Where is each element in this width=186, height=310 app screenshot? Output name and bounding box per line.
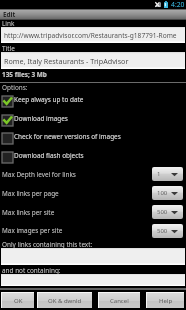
staticText: Title [2,44,15,53]
staticText: Max links per site [2,208,55,217]
staticText: Max Depth level for links [2,170,76,179]
staticText: Max links per page [2,189,59,198]
button[interactable]: Check for newer versions of images [1,132,181,145]
staticText: Download flash objects [14,151,84,160]
staticText: Only links containing this text: [2,240,93,249]
button[interactable]: Cancel [99,293,140,308]
staticText: 500 [157,227,168,235]
other: Signal strength [155,2,161,7]
button[interactable] [1,274,185,286]
button[interactable]: 500 [152,224,183,238]
staticText: Keep always up to date [14,95,84,104]
staticText: Cancel [110,297,129,305]
button[interactable]: 1 [152,167,183,181]
staticText: Download images [14,114,68,123]
staticText: Edit [3,10,16,19]
staticText: Max images per site [2,226,63,235]
staticText: and not containing: [2,266,61,275]
staticText: Rome, Italy Restaurants - TripAdvisor [4,56,129,66]
button[interactable]: Help [147,293,184,308]
button[interactable]: Download flash objects [1,151,181,164]
staticText: Check for newer versions of images [14,132,121,141]
staticText: 4:20 [171,0,185,9]
button[interactable]: OK & dwnld [38,293,92,308]
staticText: Options: [2,83,28,92]
button[interactable]: Rome, Italy Restaurants - TripAdvisor [1,52,185,69]
staticText: Link [2,19,15,28]
button[interactable] [1,248,185,265]
button[interactable]: http://www.tripadvisor.com/Restaurants-g… [1,27,185,43]
other: Battery [164,1,168,8]
button[interactable]: 500 [152,205,183,219]
staticText: OK [14,297,23,305]
staticText: 500 [157,208,168,216]
staticText: 135 files; 3 Mb [2,70,47,79]
button[interactable]: 100 [152,186,183,200]
staticText: 100 [157,189,168,197]
staticText: Help [159,297,173,305]
button[interactable]: Download images [1,114,181,127]
staticText: OK & dwnld [48,297,82,305]
staticText: http://www.tripadvisor.com/Restaurants-g… [4,31,177,40]
button[interactable]: Keep always up to date [1,95,181,108]
staticText: 1 [157,170,161,178]
button[interactable]: OK [2,293,34,308]
